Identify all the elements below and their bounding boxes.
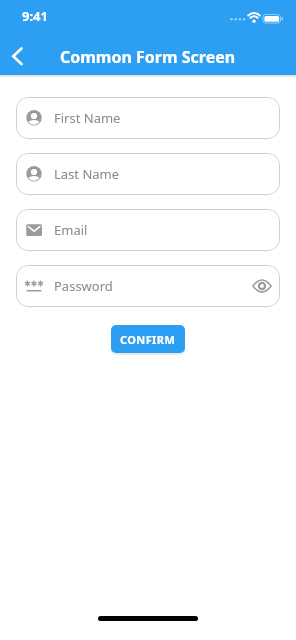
staticText: Password [54,277,113,295]
staticText: 9:41 [22,7,48,25]
button[interactable] [2,41,32,71]
staticText: Email [54,221,88,239]
staticText: Common Form Screen [60,46,236,68]
button[interactable]: CONFIRM [111,325,185,353]
button[interactable]: First Name [16,97,280,139]
staticText: First Name [54,109,121,127]
staticText: CONFIRM [120,332,176,347]
button[interactable]: Last Name [16,153,280,195]
button[interactable]: Email [16,209,280,251]
staticText: Last Name [54,165,120,183]
button[interactable]: Password [16,265,280,307]
